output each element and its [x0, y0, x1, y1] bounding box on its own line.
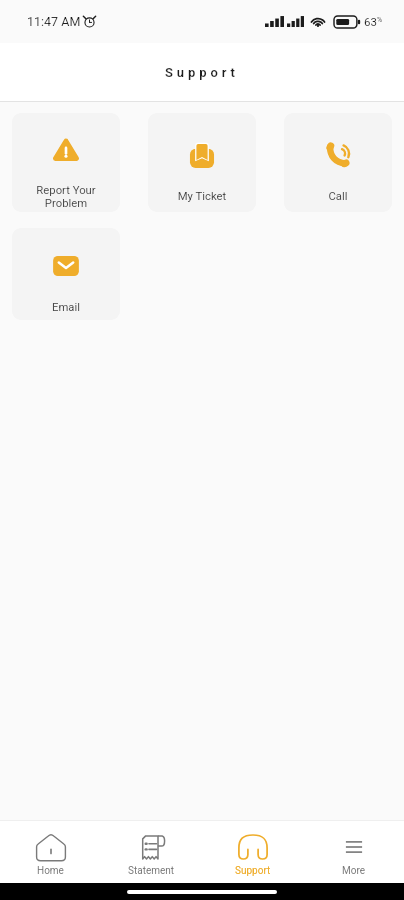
button[interactable]: Statement	[101, 821, 202, 883]
staticText: 11:47 AM	[27, 14, 81, 29]
button[interactable]: My Ticket	[148, 113, 256, 212]
staticText: Support	[165, 65, 239, 80]
staticText: %	[377, 16, 383, 24]
staticText: My Ticket	[148, 190, 256, 203]
button[interactable]: More	[303, 821, 404, 883]
staticText: More	[342, 865, 366, 877]
staticText: 63	[364, 15, 377, 28]
staticText: Support	[235, 865, 271, 877]
button[interactable]: Call	[284, 113, 392, 212]
button[interactable]: Support	[202, 821, 303, 883]
button[interactable]: Report Your Problem	[12, 113, 120, 212]
staticText: Statement	[128, 865, 175, 877]
button[interactable]: Email	[12, 228, 120, 320]
staticText: Home	[37, 865, 64, 877]
staticText: Report Your Problem	[12, 184, 120, 210]
button[interactable]: Home	[0, 821, 101, 883]
staticText: Email	[12, 301, 120, 314]
staticText: Call	[284, 190, 392, 203]
